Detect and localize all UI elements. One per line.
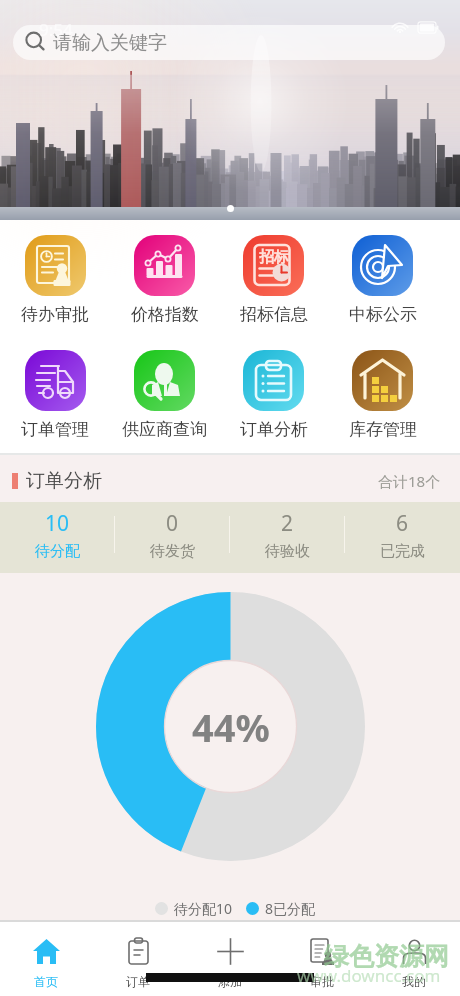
button[interactable]: 待办审批 (0, 220, 110, 346)
button[interactable]: 6 (345, 502, 460, 567)
button[interactable]: 首页 (0, 922, 92, 996)
button[interactable]: 2 (230, 502, 345, 567)
staticText: 订单分析 (26, 469, 102, 493)
button[interactable]: 订单管理 (0, 346, 110, 440)
button[interactable]: 10 (0, 502, 115, 567)
staticText: 招标信息 (240, 304, 308, 325)
button[interactable]: 0 (115, 502, 230, 567)
staticText: 8已分配 (265, 899, 316, 918)
staticText: 44% (192, 701, 270, 753)
staticText: 中标公示 (349, 304, 417, 325)
button[interactable]: 供应商查询 (110, 346, 219, 440)
staticText: 招标 (259, 248, 289, 267)
staticText: 添加 (218, 974, 242, 989)
staticText: 待验收 (265, 542, 310, 561)
staticText: 待办审批 (21, 304, 89, 325)
staticText: 2 (281, 509, 294, 538)
staticText: 待发货 (150, 542, 195, 561)
button[interactable]: 我的 (368, 922, 460, 996)
staticText: 首页 (34, 974, 58, 989)
button[interactable]: 价格指数 (110, 220, 219, 346)
staticText: 9:54 (39, 18, 73, 41)
staticText: 待分配 (35, 542, 80, 561)
staticText: 价格指数 (131, 304, 199, 325)
staticText: 已完成 (380, 542, 425, 561)
button[interactable]: 订单 (92, 922, 184, 996)
staticText: 0 (166, 509, 179, 538)
staticText: 供应商查询 (122, 419, 207, 440)
staticText: 订单管理 (21, 419, 89, 440)
button[interactable]: 库存管理 (328, 346, 437, 440)
staticText: 订单 (126, 974, 150, 989)
staticText: 库存管理 (349, 419, 417, 440)
button[interactable]: 添加 (184, 922, 276, 996)
staticText: 审批 (310, 974, 334, 989)
staticText: 订单分析 (240, 419, 308, 440)
button[interactable]: 中标公示 (328, 220, 437, 346)
button[interactable]: 审批 (276, 922, 368, 996)
staticText: 请输入关键字 (53, 31, 167, 55)
staticText: 6 (396, 509, 409, 538)
button[interactable]: 招标 (219, 220, 328, 346)
staticText: 10 (45, 509, 70, 538)
staticText: 待分配10 (174, 899, 233, 918)
staticText: www.downcc.com (297, 964, 441, 987)
staticText: 合计18个 (378, 471, 441, 491)
button[interactable]: 请输入关键字 (13, 25, 445, 60)
staticText: 我的 (402, 974, 426, 989)
staticText: 绿色资源网 (324, 941, 449, 972)
button[interactable]: 订单分析 (219, 346, 328, 440)
